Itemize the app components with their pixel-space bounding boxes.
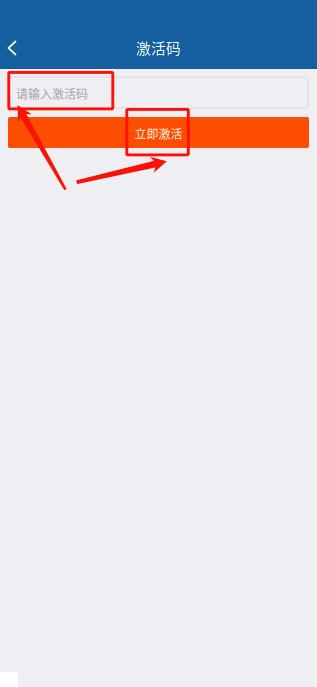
staticText: 激活码: [136, 37, 181, 58]
staticText: 请输入激活码: [16, 85, 88, 102]
staticText: 立即激活: [134, 125, 182, 142]
button[interactable]: Back: [0, 29, 32, 65]
button[interactable]: 立即激活: [8, 117, 309, 148]
